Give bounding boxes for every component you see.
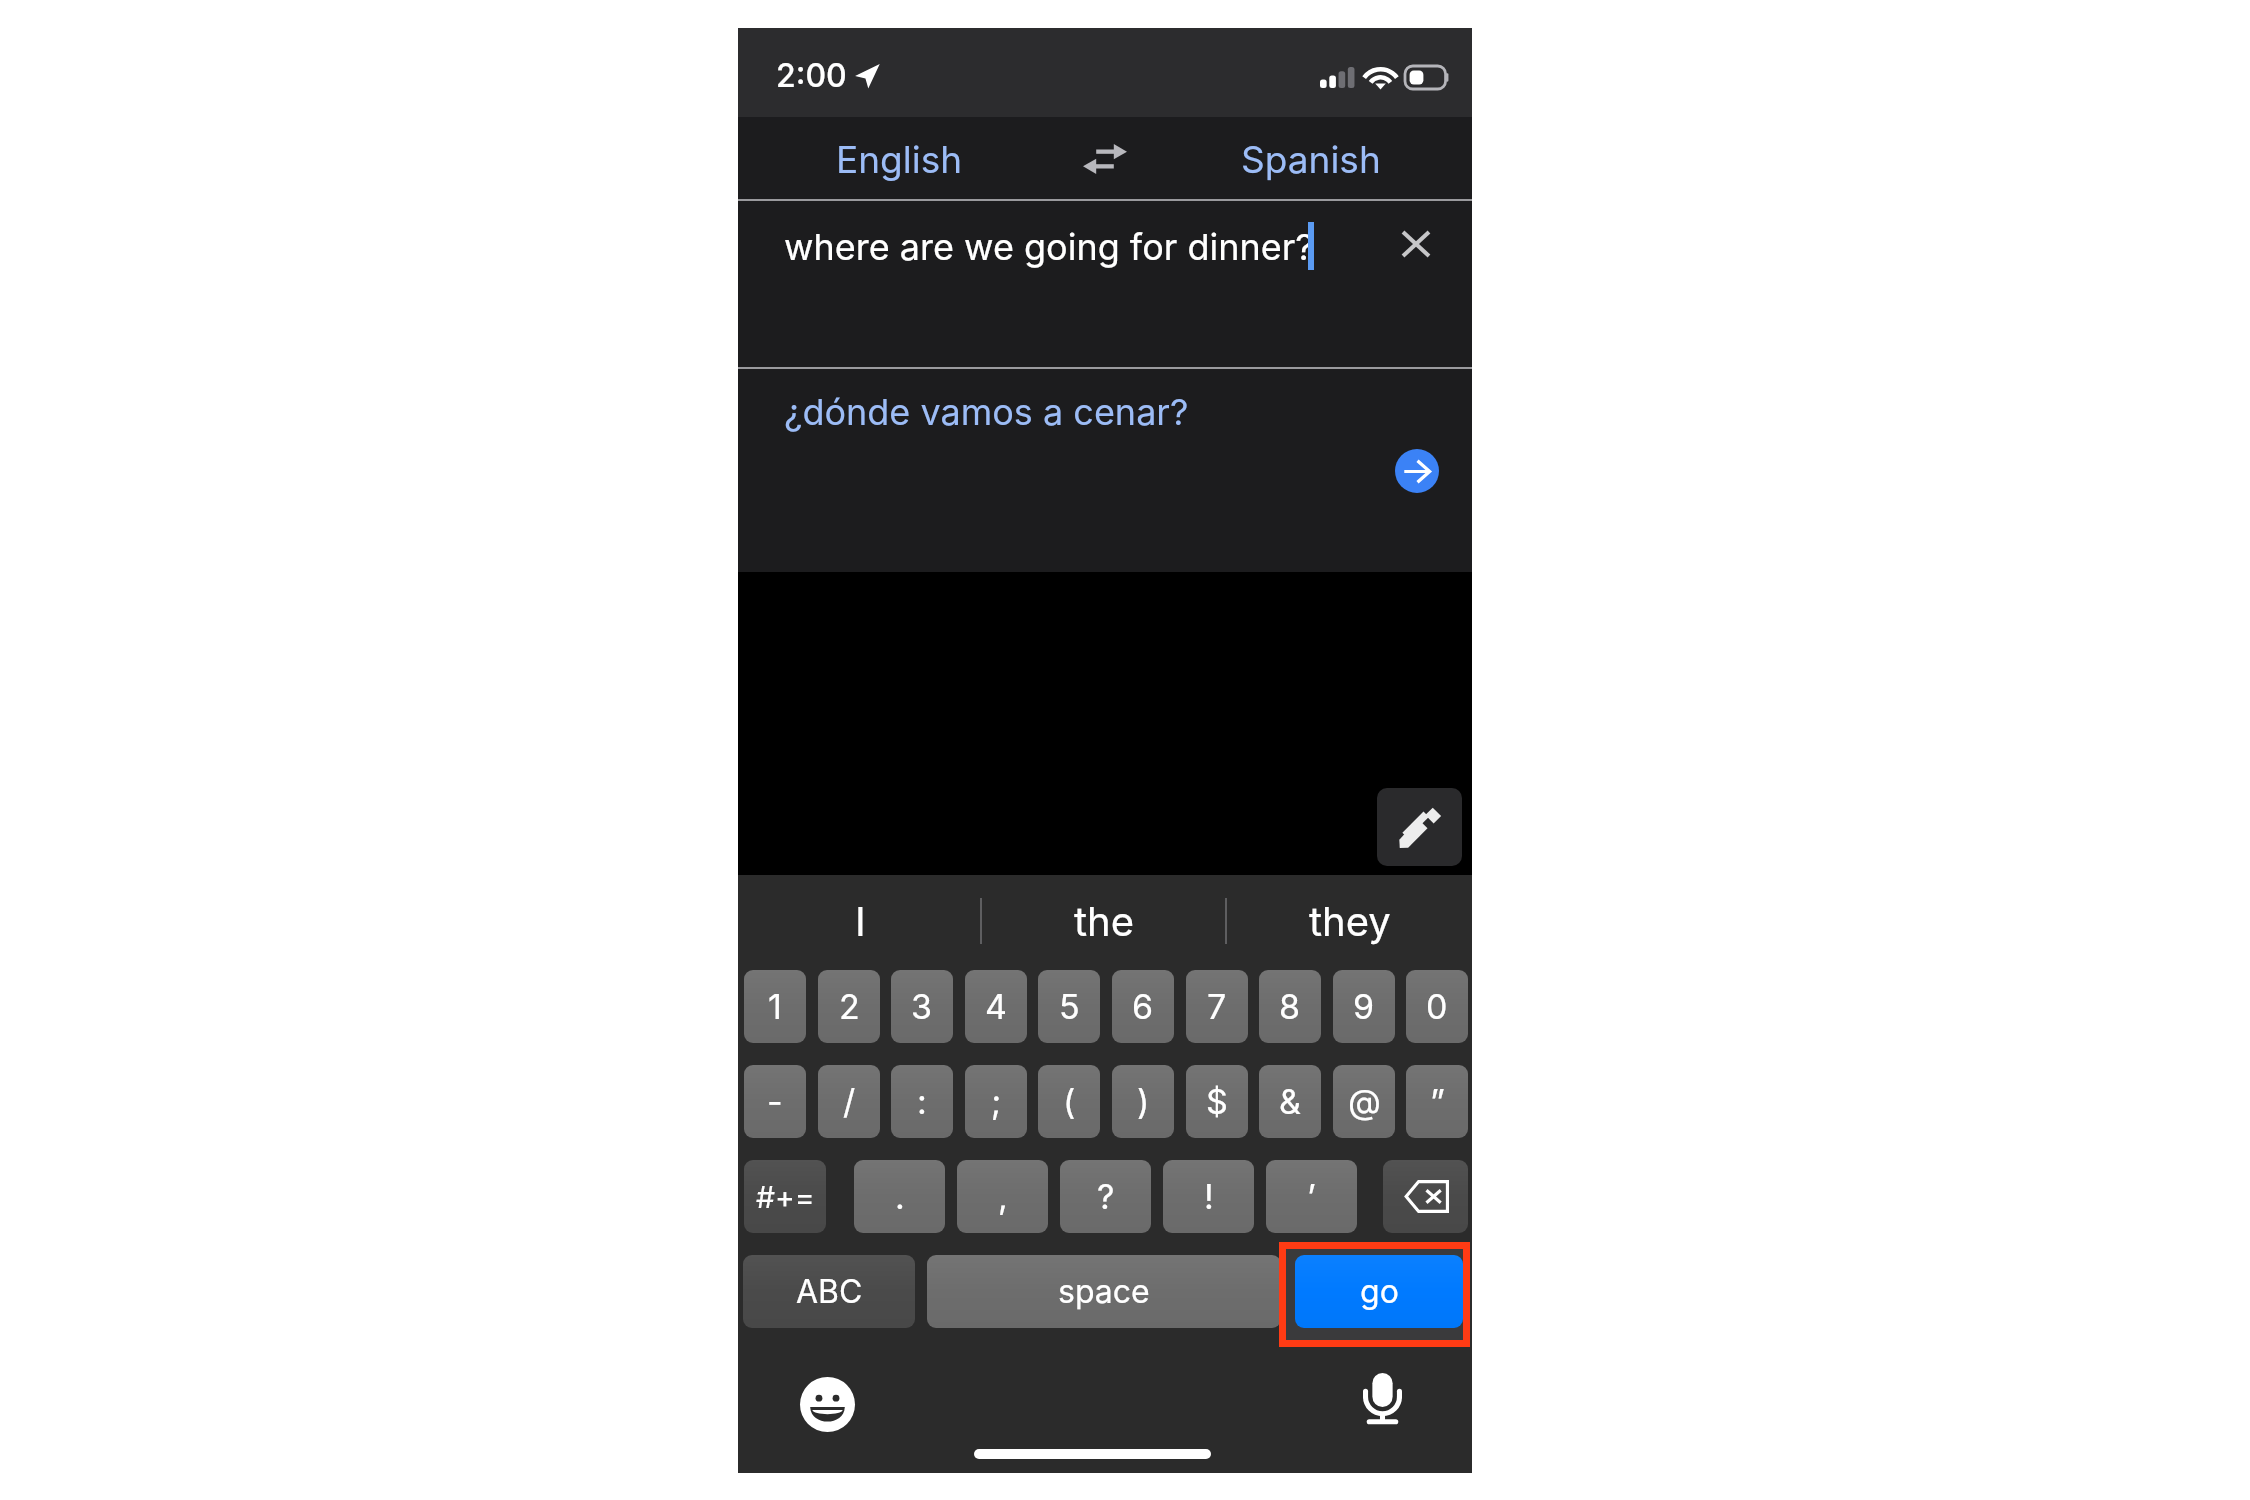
button[interactable]: ABC bbox=[743, 1255, 915, 1328]
button[interactable]: : bbox=[891, 1065, 953, 1138]
button[interactable]: Show translation bbox=[1395, 449, 1439, 493]
staticText: 8 bbox=[1279, 986, 1301, 1027]
button[interactable]: Clear text bbox=[1387, 215, 1445, 273]
button[interactable]: 6 bbox=[1112, 970, 1174, 1043]
staticText: ) bbox=[1137, 1081, 1150, 1122]
button[interactable]: 2 bbox=[818, 970, 880, 1043]
button[interactable]: , bbox=[957, 1160, 1048, 1233]
button[interactable]: 7 bbox=[1186, 970, 1248, 1043]
button[interactable]: #+= bbox=[744, 1160, 826, 1233]
button[interactable]: space bbox=[927, 1255, 1281, 1328]
staticText: Spanish bbox=[1241, 137, 1381, 182]
button[interactable]: ) bbox=[1112, 1065, 1174, 1138]
staticText: I bbox=[855, 897, 866, 945]
staticText: 0 bbox=[1426, 986, 1448, 1027]
staticText: ( bbox=[1063, 1081, 1076, 1122]
staticText: . bbox=[895, 1176, 905, 1217]
staticText: go bbox=[1360, 1272, 1399, 1311]
button[interactable]: ? bbox=[1060, 1160, 1151, 1233]
button[interactable]: English bbox=[738, 117, 1060, 201]
staticText: @ bbox=[1348, 1081, 1381, 1122]
button[interactable]: Spanish bbox=[1150, 117, 1472, 201]
staticText: 4 bbox=[985, 986, 1007, 1027]
button[interactable]: they bbox=[1227, 875, 1472, 966]
staticText: they bbox=[1309, 897, 1391, 945]
button[interactable]: 5 bbox=[1038, 970, 1100, 1043]
staticText: ? bbox=[1097, 1176, 1115, 1217]
button[interactable]: - bbox=[744, 1065, 806, 1138]
button[interactable]: 0 bbox=[1406, 970, 1468, 1043]
staticText: space bbox=[1058, 1272, 1150, 1311]
button[interactable]: Backspace bbox=[1383, 1160, 1468, 1233]
button[interactable]: @ bbox=[1333, 1065, 1395, 1138]
staticText: $ bbox=[1206, 1081, 1228, 1122]
button[interactable]: Dictation bbox=[1345, 1361, 1420, 1436]
button[interactable]: 1 bbox=[744, 970, 806, 1043]
staticText: 2 bbox=[839, 986, 860, 1027]
button[interactable]: $ bbox=[1186, 1065, 1248, 1138]
button[interactable]: ! bbox=[1163, 1160, 1254, 1233]
staticText: 9 bbox=[1353, 986, 1375, 1027]
button[interactable]: / bbox=[818, 1065, 880, 1138]
staticText: ¿dónde vamos a cenar? bbox=[784, 390, 1189, 434]
staticText: : bbox=[917, 1081, 927, 1122]
staticText: where are we going for dinner? bbox=[784, 225, 1314, 269]
button[interactable]: Swap languages bbox=[1060, 117, 1150, 201]
staticText: 1 bbox=[768, 986, 782, 1027]
button[interactable]: ’ bbox=[1266, 1160, 1357, 1233]
staticText: ’ bbox=[1307, 1176, 1316, 1217]
button[interactable]: Emoji bbox=[790, 1367, 865, 1442]
staticText: , bbox=[998, 1176, 1008, 1217]
button[interactable]: 9 bbox=[1333, 970, 1395, 1043]
button[interactable]: 3 bbox=[891, 970, 953, 1043]
button[interactable]: the bbox=[982, 875, 1227, 966]
staticText: / bbox=[843, 1081, 856, 1122]
button[interactable]: 8 bbox=[1259, 970, 1321, 1043]
staticText: ” bbox=[1430, 1081, 1445, 1122]
button[interactable]: & bbox=[1259, 1065, 1321, 1138]
button[interactable]: 4 bbox=[965, 970, 1027, 1043]
staticText: ; bbox=[991, 1081, 1002, 1122]
staticText: #+= bbox=[756, 1179, 815, 1215]
button[interactable]: . bbox=[854, 1160, 945, 1233]
staticText: English bbox=[836, 137, 963, 182]
staticText: the bbox=[1074, 897, 1135, 945]
staticText: 3 bbox=[911, 986, 933, 1027]
staticText: 6 bbox=[1132, 986, 1154, 1027]
staticText: ABC bbox=[796, 1272, 863, 1311]
staticText: 2:00 bbox=[776, 56, 847, 95]
button[interactable]: ” bbox=[1406, 1065, 1468, 1138]
button[interactable]: Handwriting bbox=[1377, 788, 1462, 866]
staticText: 5 bbox=[1059, 986, 1080, 1027]
staticText: ! bbox=[1204, 1176, 1214, 1217]
staticText: & bbox=[1279, 1081, 1301, 1122]
button[interactable]: go bbox=[1295, 1255, 1463, 1328]
staticText: 7 bbox=[1207, 986, 1227, 1027]
staticText: - bbox=[767, 1081, 783, 1122]
button[interactable]: ( bbox=[1038, 1065, 1100, 1138]
button[interactable]: I bbox=[738, 875, 982, 966]
button[interactable]: ; bbox=[965, 1065, 1027, 1138]
